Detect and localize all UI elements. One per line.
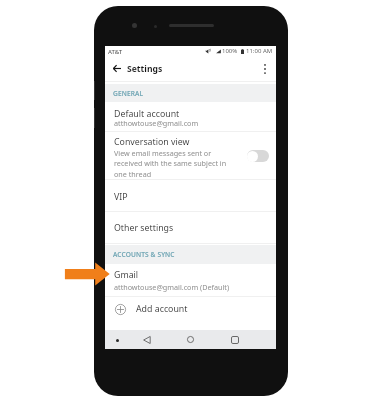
button[interactable]: Conversation view toggle bbox=[243, 146, 273, 166]
staticText: Default account bbox=[114, 108, 180, 120]
staticText: GENERAL bbox=[113, 89, 144, 98]
button[interactable]: Other settings bbox=[105, 211, 276, 244]
button[interactable]: Conversation view bbox=[105, 132, 276, 180]
staticText: Other settings bbox=[114, 222, 174, 234]
button[interactable]: Recents bbox=[225, 330, 244, 349]
button[interactable]: Back bbox=[137, 330, 156, 349]
staticText: ACCOUNTS & SYNC bbox=[113, 250, 175, 259]
button[interactable]: Default account bbox=[105, 102, 276, 132]
staticText: View email messages sent or received wit… bbox=[114, 148, 227, 180]
button[interactable]: VIP bbox=[105, 180, 276, 212]
button[interactable]: More options bbox=[258, 62, 272, 76]
staticText: atthowtouse@gmail.com bbox=[114, 118, 199, 128]
staticText: AT&T bbox=[108, 48, 123, 56]
button[interactable]: Back bbox=[108, 60, 125, 77]
staticText: atthowtouse@gmail.com (Default) bbox=[114, 282, 230, 292]
staticText: VIP bbox=[114, 191, 128, 203]
button[interactable]: Add account bbox=[105, 297, 276, 330]
staticText: Settings bbox=[127, 63, 163, 75]
button[interactable]: Home bbox=[181, 330, 200, 349]
staticText: Conversation view bbox=[114, 136, 190, 148]
button[interactable]: Gmail bbox=[105, 264, 276, 297]
staticText: 11:00 AM bbox=[246, 47, 273, 55]
staticText: Gmail bbox=[114, 269, 139, 281]
staticText: Add account bbox=[136, 303, 188, 315]
staticText: 100% bbox=[222, 47, 238, 55]
